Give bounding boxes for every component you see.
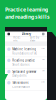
staticText: Daily drills [12, 74, 26, 77]
staticText: Recents [13, 36, 21, 43]
staticText: Practice learning [5, 6, 48, 13]
staticText: Reading practice [12, 59, 35, 62]
staticText: Sort by date [30, 36, 39, 43]
staticText: Short stories [12, 63, 29, 66]
staticText: Library [21, 32, 30, 36]
staticText: Machine learning [12, 47, 36, 51]
staticText: 20 min [41, 81, 45, 83]
staticText: 8 min [42, 59, 45, 60]
staticText: and reading skills [5, 13, 50, 20]
staticText: 5 min [42, 70, 45, 72]
staticText: Foundations of AI [12, 52, 37, 55]
staticText: 12 min [41, 47, 45, 49]
staticText: Conversation [12, 85, 30, 89]
staticText: Talk sessions [12, 81, 28, 85]
staticText: Syntax and grammar [12, 70, 36, 73]
